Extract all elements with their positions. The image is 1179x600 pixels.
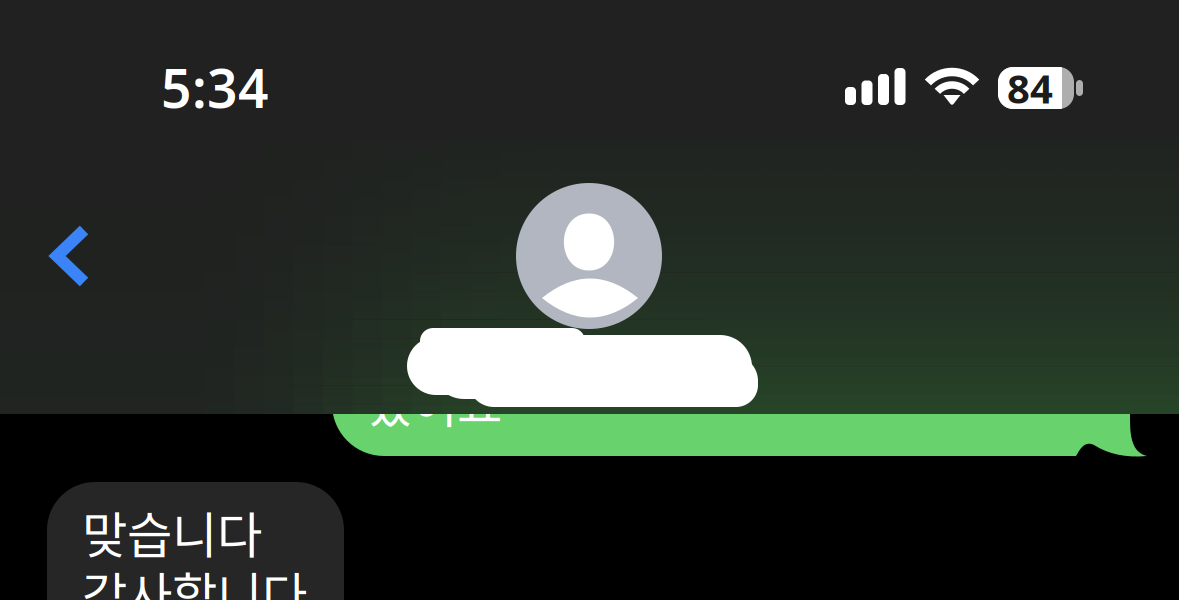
staticText: 84 — [1007, 61, 1053, 114]
staticText: 감사합니다 — [82, 556, 307, 600]
button[interactable]: Back — [17, 202, 125, 310]
button[interactable]: Contact details — [405, 180, 761, 408]
staticText: 았어요 — [367, 366, 502, 437]
staticText: 맞습니다 — [82, 496, 262, 567]
staticText: 5:34 — [161, 52, 269, 123]
